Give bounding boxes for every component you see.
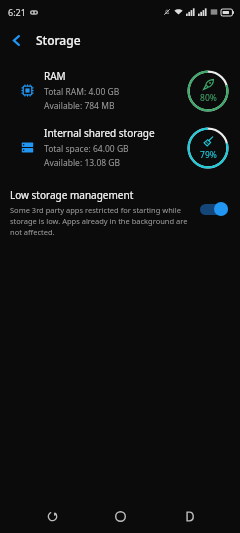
button[interactable]: Home xyxy=(103,499,137,533)
staticText: Storage xyxy=(36,32,81,48)
button[interactable]: Internal shared storage xyxy=(0,119,240,176)
staticText: Low storage management xyxy=(10,188,134,202)
button[interactable]: Low storage management toggle xyxy=(200,200,232,218)
staticText: 80% xyxy=(200,92,217,104)
staticText: Available: 784 MB xyxy=(44,100,115,112)
staticText: Total space: 64.00 GB xyxy=(44,143,129,155)
staticText: Available: 13.08 GB xyxy=(44,157,121,169)
staticText: RAM xyxy=(44,69,66,83)
button[interactable]: Back xyxy=(172,499,206,533)
staticText: 6:21 xyxy=(8,6,26,18)
button[interactable]: Recents xyxy=(35,499,69,533)
button[interactable]: RAM xyxy=(0,62,240,119)
staticText: Internal shared storage xyxy=(44,126,155,140)
staticText: Some 3rd party apps restricted for start… xyxy=(10,205,194,237)
button[interactable]: Back xyxy=(0,24,32,56)
staticText: Total RAM: 4.00 GB xyxy=(44,86,120,98)
staticText: 79% xyxy=(200,149,217,161)
button[interactable]: Low storage management xyxy=(0,182,240,245)
